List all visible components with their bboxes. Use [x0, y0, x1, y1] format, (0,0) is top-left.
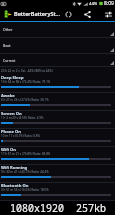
- staticText: 10 m 11 s (0.7%) Ratio: 0.8%: [1, 134, 41, 138]
- button[interactable]: Wifi Running: [0, 165, 115, 183]
- button[interactable]: Bluetooth On: [0, 183, 115, 201]
- staticText: 6 h 27 m 26 s (27.6%) Ratio: 30.1%: [1, 98, 49, 102]
- staticText: Current: [3, 58, 16, 63]
- staticText: Phone On: [1, 129, 21, 135]
- staticText: 16 h 54 m 58 s (72.4%) Ratio: 79.1%: [1, 80, 51, 84]
- staticText: 1080x1920 257kb: [10, 201, 106, 215]
- button[interactable]: Other: [0, 22, 115, 37]
- button[interactable]: Deep Sleep: [0, 75, 115, 93]
- staticText: Wifi Running: [1, 165, 28, 171]
- staticText: 9 h 30 m 41 s (40.7%) Ratio: 44.4%: [1, 170, 49, 174]
- staticText: 3 h 51 m 55 s (16.5%) Ratio: 18.0%: [1, 188, 49, 192]
- staticText: 1 h 3 m 29 s (4.5%) Ratio: 4.9%: [1, 116, 44, 120]
- staticText: Boot: [3, 43, 11, 48]
- staticText: Bluetooth On: [1, 183, 29, 189]
- staticText: 17 h 57 m 21 s (76.8%) Ratio: 83.8%: [1, 152, 51, 156]
- button[interactable]: Screen On: [0, 111, 115, 129]
- staticText: Screen On: [1, 111, 22, 117]
- staticText: Other: [3, 27, 13, 32]
- staticText: 8:09: [104, 0, 114, 7]
- button[interactable]: Settings: [103, 9, 114, 20]
- staticText: 23 h 22 m 2 s Est. -44% (88% to 44%): [1, 69, 53, 73]
- staticText: Wifi On: [1, 147, 16, 153]
- button[interactable]: Phone On: [0, 129, 115, 147]
- staticText: 44%: [89, 1, 98, 7]
- button[interactable]: Current: [0, 54, 115, 66]
- staticText: BetterBatterySt…: [14, 10, 61, 18]
- staticText: Deep Sleep: [1, 75, 24, 81]
- button[interactable]: Wifi On: [0, 147, 115, 165]
- button[interactable]: Boot: [0, 38, 115, 53]
- button[interactable]: Share: [82, 9, 93, 20]
- staticText: Awake: [1, 93, 15, 99]
- button[interactable]: Awake: [0, 93, 115, 111]
- button[interactable]: Refresh: [63, 9, 74, 20]
